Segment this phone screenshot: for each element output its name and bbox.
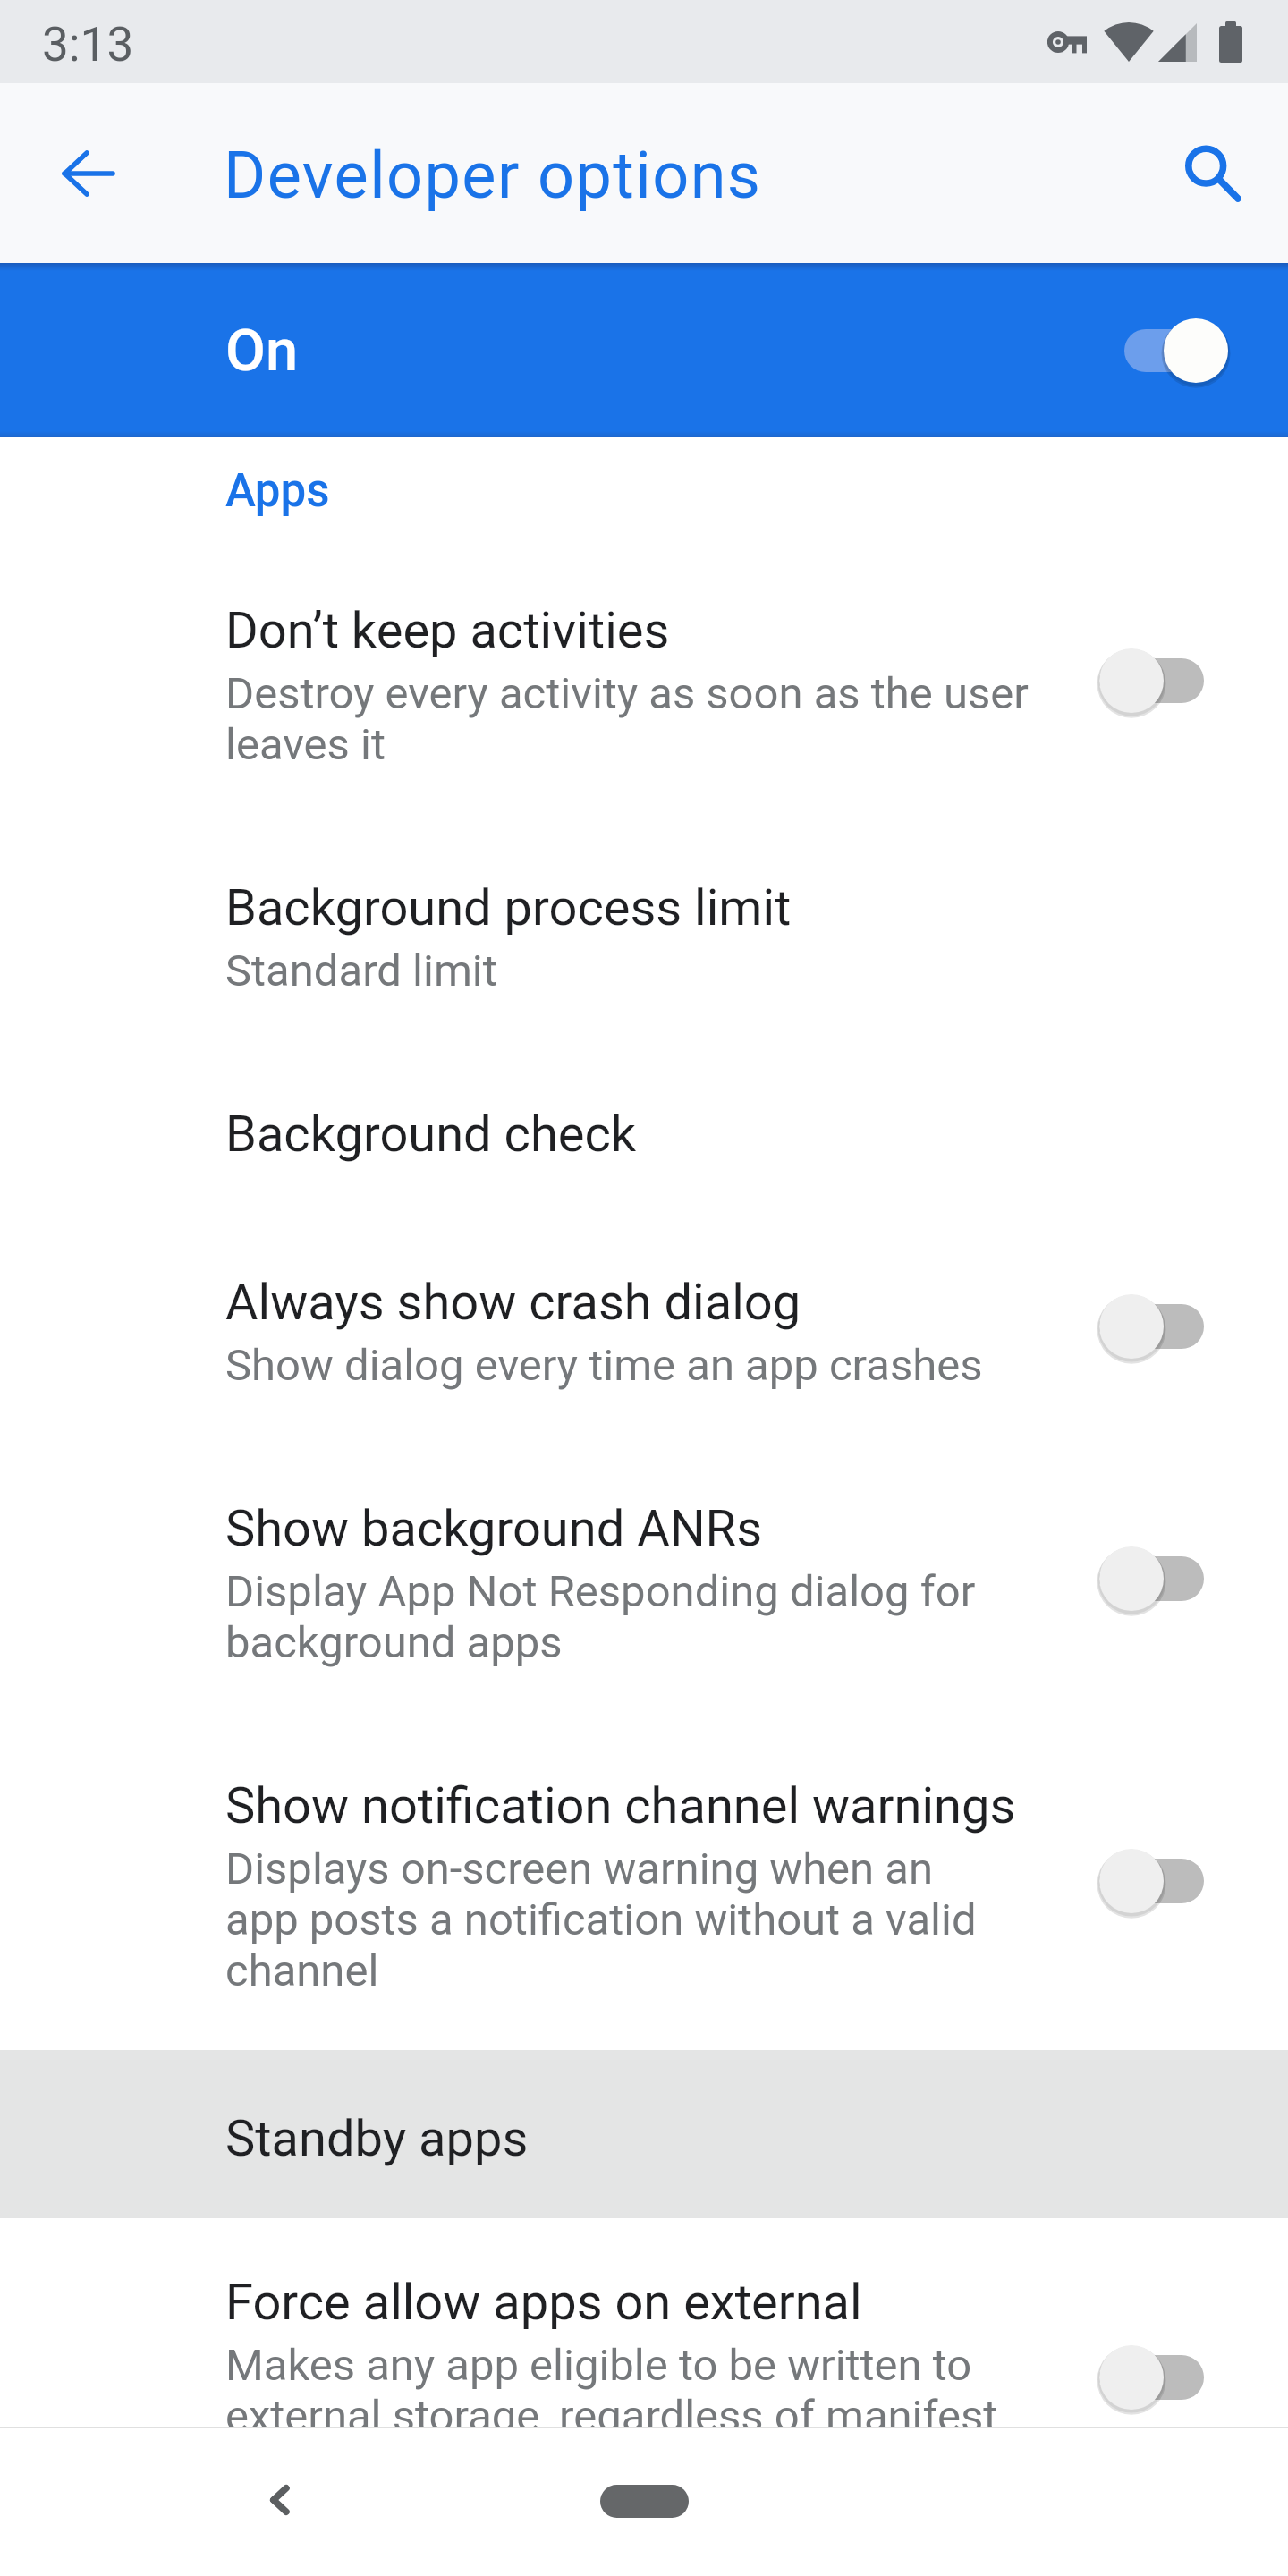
button[interactable]: Force allow apps on external: [1099, 2340, 1204, 2415]
staticText: Apps: [225, 464, 330, 518]
button[interactable]: Force allow apps on external: [0, 2218, 1288, 2427]
staticText: On: [225, 317, 299, 385]
button[interactable]: Search: [1159, 120, 1267, 227]
staticText: Show notification channel warnings: [225, 1776, 1016, 1835]
button[interactable]: Show notification channel warnings: [0, 1722, 1288, 2050]
button[interactable]: Background process limit: [0, 824, 1288, 1050]
staticText: Don’t keep activities: [225, 601, 670, 660]
staticText: Background check: [225, 1105, 637, 1164]
staticText: Force allow apps on external: [225, 2273, 862, 2332]
button[interactable]: Show background ANRs: [1099, 1541, 1204, 1616]
staticText: Developer options: [224, 138, 762, 213]
button[interactable]: Don’t keep activities: [0, 547, 1288, 824]
staticText: Always show crash dialog: [225, 1273, 801, 1332]
button[interactable]: Show background ANRs: [0, 1445, 1288, 1722]
button[interactable]: On: [0, 263, 1288, 437]
staticText: Makes any app eligible to be written to …: [225, 2340, 998, 2427]
staticText: 3:13: [42, 17, 134, 72]
button[interactable]: Always show crash dialog: [0, 1218, 1288, 1445]
staticText: Show background ANRs: [225, 1499, 763, 1558]
staticText: Destroy every activity as soon as the us…: [225, 668, 1029, 770]
staticText: Standard limit: [225, 945, 497, 996]
button[interactable]: Background check: [0, 1050, 1288, 1218]
staticText: Background process limit: [225, 878, 792, 937]
button[interactable]: Always show crash dialog: [1099, 1289, 1204, 1364]
staticText: Show dialog every time an app crashes: [225, 1340, 983, 1391]
staticText: Displays on-screen warning when an app p…: [225, 1843, 977, 1996]
staticText: Standby apps: [225, 2109, 529, 2168]
button[interactable]: Home: [600, 2485, 689, 2518]
button[interactable]: Don’t keep activities: [1099, 643, 1204, 718]
button[interactable]: Back: [225, 2446, 332, 2554]
button[interactable]: Navigate up: [35, 120, 142, 227]
staticText: Display App Not Responding dialog for ba…: [225, 1566, 976, 1668]
button[interactable]: Show notification channel warnings: [1099, 1843, 1204, 1919]
